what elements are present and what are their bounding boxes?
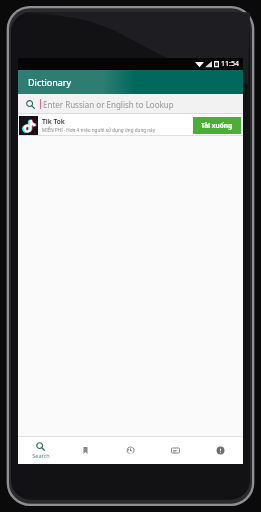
- button[interactable]: Tải xuống: [193, 117, 241, 134]
- staticText: Search: [32, 452, 50, 459]
- button[interactable]: Dictionary: [18, 70, 243, 94]
- staticText: MIỄN PHÍ · Hơn 4 triệu người sử dụng ứng…: [42, 127, 155, 133]
- button[interactable]: Search: [18, 437, 63, 464]
- staticText: 11:54: [221, 59, 239, 69]
- button[interactable]: About: [198, 437, 243, 464]
- staticText: Tải xuống: [201, 121, 233, 130]
- other: Search: [26, 100, 35, 109]
- staticText: Tik Tok: [42, 117, 65, 126]
- button[interactable]: History: [108, 437, 153, 464]
- button[interactable]: Tik Tok: [18, 114, 243, 136]
- button[interactable]: Bookmarks: [63, 437, 108, 464]
- staticText: Enter Russian or English to Lookup: [43, 99, 174, 110]
- staticText: Dictionary: [28, 76, 72, 88]
- button[interactable]: Search: [18, 94, 243, 114]
- button[interactable]: Cards: [153, 437, 198, 464]
